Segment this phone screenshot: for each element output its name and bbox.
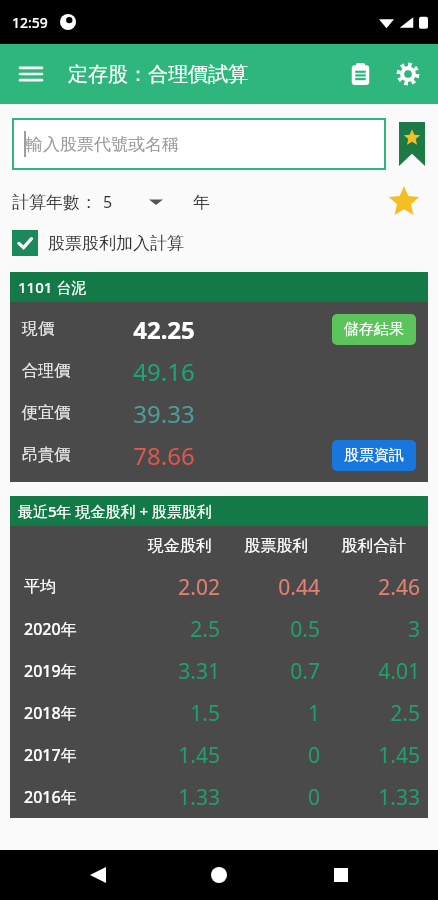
- staticText: 49.16: [104, 355, 224, 388]
- staticText: 合理價: [22, 361, 104, 381]
- staticText: 2019年: [24, 660, 120, 682]
- staticText: 年: [193, 192, 210, 213]
- staticText: 12:59: [12, 13, 48, 32]
- button[interactable]: Home: [195, 851, 243, 899]
- staticText: 股利合計: [325, 536, 422, 556]
- staticText: 2020年: [24, 618, 120, 640]
- staticText: 1.33: [320, 783, 420, 812]
- staticText: 計算年數：: [12, 192, 97, 213]
- staticText: 78.66: [104, 439, 224, 472]
- staticText: 42.25: [104, 313, 224, 346]
- staticText: 儲存結果: [344, 320, 404, 339]
- staticText: 3: [320, 615, 420, 644]
- button[interactable]: Recents: [317, 851, 365, 899]
- button[interactable]: 股票資訊: [332, 440, 416, 471]
- button[interactable]: Menu: [8, 51, 54, 97]
- staticText: 3.31: [120, 657, 220, 686]
- button[interactable]: 輸入股票代號或名稱: [12, 118, 386, 170]
- staticText: 1.45: [120, 741, 220, 770]
- staticText: 0: [220, 741, 320, 770]
- staticText: 便宜價: [22, 403, 104, 423]
- staticText: 1.45: [320, 741, 420, 770]
- button[interactable]: 5: [103, 191, 163, 213]
- staticText: 2.46: [320, 573, 420, 602]
- button[interactable]: 股票股利加入計算: [12, 230, 426, 256]
- staticText: 1.5: [120, 699, 220, 728]
- staticText: 1101 台泥: [18, 277, 87, 297]
- staticText: 0.7: [220, 657, 320, 686]
- staticText: 現價: [22, 319, 104, 339]
- staticText: 現金股利: [132, 536, 228, 556]
- staticText: 0.5: [220, 615, 320, 644]
- button[interactable]: Back: [74, 851, 122, 899]
- staticText: 最近5年 現金股利 + 股票股利: [18, 501, 212, 521]
- staticText: 4.01: [320, 657, 420, 686]
- staticText: 0.44: [220, 573, 320, 602]
- button[interactable]: Bookmark: [398, 120, 426, 168]
- staticText: 昂貴價: [22, 445, 104, 465]
- staticText: 0: [220, 783, 320, 812]
- staticText: 2.5: [320, 699, 420, 728]
- staticText: 2017年: [24, 744, 120, 766]
- staticText: 股票股利加入計算: [48, 233, 184, 254]
- staticText: 39.33: [104, 397, 224, 430]
- staticText: 股票資訊: [344, 446, 404, 465]
- staticText: 2.02: [120, 573, 220, 602]
- button[interactable]: Settings: [384, 50, 432, 98]
- staticText: 2.5: [120, 615, 220, 644]
- staticText: 2018年: [24, 702, 120, 724]
- button[interactable]: 儲存結果: [332, 314, 416, 345]
- button[interactable]: Favorite: [382, 180, 426, 224]
- staticText: 股票股利: [228, 536, 325, 556]
- staticText: 5: [103, 191, 113, 213]
- button[interactable]: Records: [336, 50, 384, 98]
- staticText: 1: [220, 699, 320, 728]
- staticText: 定存股：合理價試算: [68, 62, 248, 87]
- staticText: 1.33: [120, 783, 220, 812]
- staticText: 平均: [24, 577, 120, 597]
- staticText: 輸入股票代號或名稱: [26, 134, 179, 155]
- staticText: 2016年: [24, 786, 120, 808]
